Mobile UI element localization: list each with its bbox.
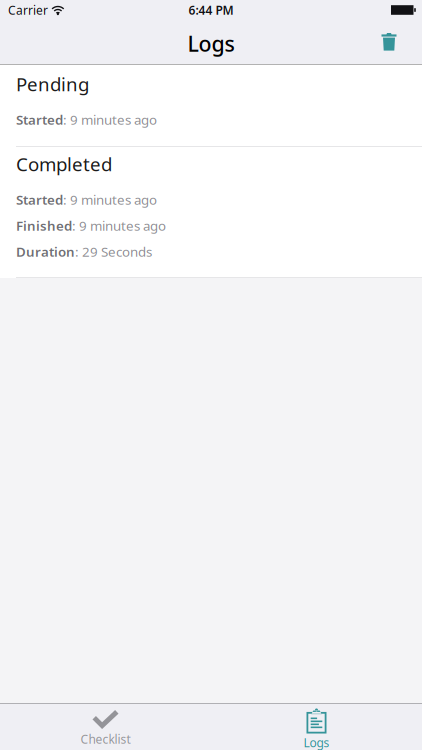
button[interactable]: Checklist	[0, 704, 211, 750]
staticText: Completed	[16, 152, 112, 176]
staticText: Checklist	[80, 731, 130, 747]
staticText: Started	[16, 191, 63, 208]
staticText: Logs	[303, 734, 329, 750]
staticText: : 9 minutes ago	[72, 217, 166, 234]
staticText: Pending	[16, 72, 89, 96]
staticText: 6:44 PM	[188, 2, 233, 18]
staticText: : 9 minutes ago	[63, 111, 157, 128]
staticText: : 9 minutes ago	[63, 191, 157, 208]
staticText: Carrier	[8, 2, 48, 18]
button[interactable]: Completed	[0, 147, 422, 277]
button[interactable]: Delete logs	[367, 20, 411, 64]
staticText: Started	[16, 111, 63, 128]
staticText: Logs	[187, 29, 234, 58]
staticText: Duration	[16, 243, 75, 260]
staticText: : 29 Seconds	[75, 243, 152, 260]
button[interactable]: Pending	[0, 65, 422, 146]
button[interactable]: Logs	[211, 704, 422, 750]
staticText: Finished	[16, 217, 72, 234]
